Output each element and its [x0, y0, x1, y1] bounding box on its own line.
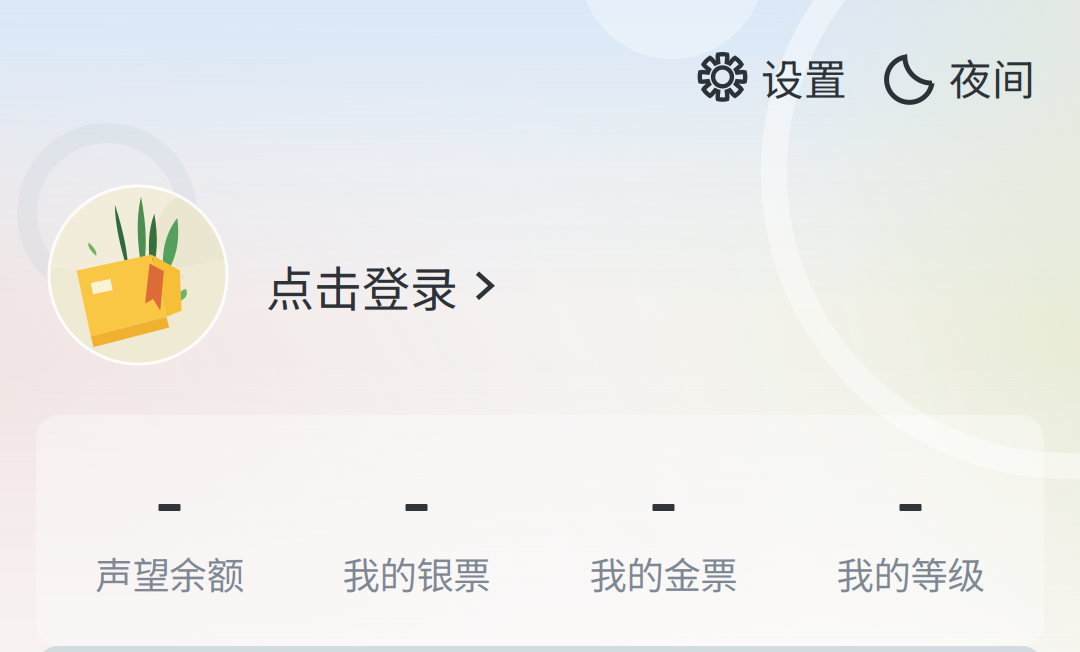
staticText: 夜间 [949, 46, 1035, 108]
button[interactable]: 夜间 [885, 40, 1035, 114]
button[interactable]: 我的等级 [787, 415, 1034, 647]
button[interactable]: 我的银票 [293, 415, 540, 647]
staticText: 我的银票 [342, 546, 490, 600]
button[interactable]: 我的金票 [540, 415, 787, 647]
button[interactable]: 声望余额 [46, 415, 293, 647]
staticText: 我的等级 [836, 546, 984, 600]
staticText: 设置 [761, 46, 847, 108]
button[interactable]: 设置 [697, 40, 847, 114]
staticText: 我的金票 [589, 546, 737, 600]
staticText: 声望余额 [95, 546, 243, 600]
staticText: 点击登录 [266, 251, 458, 320]
button[interactable]: 点击登录 [266, 243, 499, 328]
